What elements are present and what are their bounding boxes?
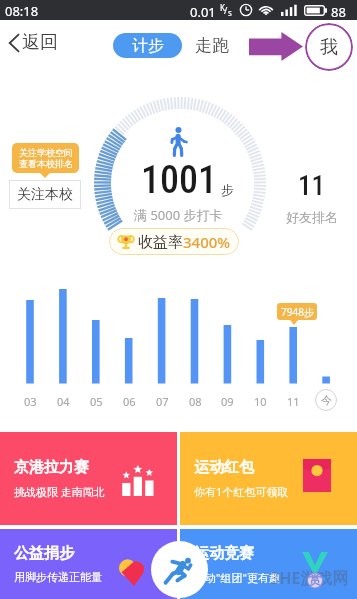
staticText: 7948步 bbox=[281, 305, 314, 319]
staticText: 关注本校 bbox=[17, 186, 73, 204]
staticText: 运动竞赛 bbox=[194, 544, 254, 563]
button[interactable]: 运动红包 bbox=[180, 432, 357, 525]
button[interactable]: 京港拉力赛 bbox=[0, 432, 177, 525]
staticText: 好友排名 bbox=[286, 209, 338, 225]
staticText: 06 bbox=[123, 394, 136, 409]
staticText: K bbox=[220, 2, 225, 13]
staticText: 公益捐步 bbox=[14, 544, 74, 563]
staticText: 收益率 bbox=[138, 233, 183, 252]
button[interactable]: 公益捐步 bbox=[0, 529, 177, 599]
staticText: 08 bbox=[189, 394, 202, 409]
button[interactable]: 关注学校空间 bbox=[12, 143, 79, 173]
staticText: 步 bbox=[221, 182, 234, 198]
staticText: 1001 bbox=[141, 158, 217, 203]
button[interactable]: 我 bbox=[305, 23, 353, 71]
staticText: 关注学校空间 bbox=[19, 147, 73, 158]
button[interactable]: 收益率 bbox=[109, 228, 239, 255]
staticText: 09 bbox=[221, 394, 234, 409]
button[interactable]: 走跑 bbox=[190, 33, 233, 58]
staticText: 赏 bbox=[309, 572, 321, 587]
staticText: 我 bbox=[320, 36, 338, 59]
button[interactable]: 返回 bbox=[5, 28, 61, 57]
staticText: 03 bbox=[24, 394, 37, 409]
staticText: 走跑 bbox=[195, 35, 229, 56]
staticText: 今 bbox=[321, 393, 332, 407]
button[interactable]: 11 bbox=[285, 170, 337, 196]
staticText: 0.01 bbox=[190, 3, 216, 21]
button[interactable]: 今 bbox=[315, 389, 337, 411]
staticText: 挑战极限 走南闯北 bbox=[14, 484, 105, 499]
staticText: 京港拉力赛 bbox=[14, 458, 89, 477]
staticText: s bbox=[228, 7, 232, 18]
staticText: 用脚步传递正能量 bbox=[14, 570, 102, 584]
staticText: 88 bbox=[331, 3, 346, 21]
button[interactable]: 计步 bbox=[113, 33, 182, 58]
staticText: 11 bbox=[287, 394, 300, 409]
button[interactable]: Start running bbox=[151, 541, 208, 598]
staticText: 08:18 bbox=[5, 2, 39, 20]
staticText: / bbox=[224, 4, 228, 16]
button[interactable]: 关注本校 bbox=[9, 180, 81, 209]
staticText: 11 bbox=[298, 170, 325, 196]
button[interactable]: 运动竞赛 bbox=[180, 529, 357, 599]
staticText: 3HE游戏网 bbox=[270, 567, 349, 589]
staticText: 返回 bbox=[22, 31, 58, 54]
staticText: 10 bbox=[254, 394, 267, 409]
staticText: 04 bbox=[57, 394, 70, 409]
staticText: 查看本校排名 bbox=[19, 158, 73, 169]
staticText: 满 5000 步打卡 bbox=[134, 206, 223, 224]
staticText: 3400% bbox=[183, 232, 231, 252]
staticText: 运动"组团"更有趣 bbox=[194, 570, 280, 585]
staticText: 05 bbox=[90, 394, 103, 409]
staticText: 07 bbox=[156, 394, 169, 409]
staticText: 运动红包 bbox=[194, 458, 254, 477]
staticText: 计步 bbox=[132, 36, 164, 56]
staticText: 你有1个红包可领取 bbox=[194, 484, 289, 499]
